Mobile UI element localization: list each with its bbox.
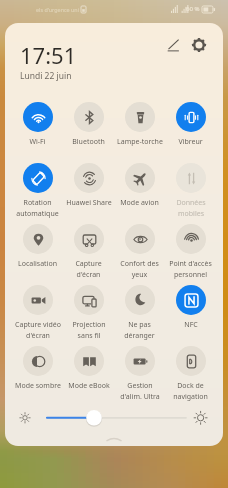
button[interactable]: NFC <box>165 285 216 330</box>
button[interactable]: Bluetooth <box>63 102 114 147</box>
staticText: Capture vidéo d'écran <box>15 320 61 340</box>
staticText: Huawei Share <box>66 198 112 208</box>
staticText: Données mobiles <box>176 198 206 218</box>
button[interactable]: Capture d'écran <box>63 224 114 279</box>
button[interactable]: Modifier <box>161 33 185 57</box>
button[interactable]: Données mobiles <box>165 163 216 218</box>
button[interactable]: Mode sombre <box>12 346 63 391</box>
button[interactable]: Localisation <box>12 224 63 269</box>
staticText: Ne pas déranger <box>124 320 155 340</box>
staticText: Dock de navigation <box>173 381 208 401</box>
staticText: NFC <box>184 320 198 330</box>
staticText: Rotation automatique <box>16 198 59 218</box>
button[interactable]: Luminosité <box>5 23 223 446</box>
button[interactable]: Confort des yeux <box>114 224 165 279</box>
button[interactable]: Mode eBook <box>63 346 114 391</box>
staticText: Lundi 22 juin <box>20 70 72 82</box>
button[interactable]: Rotation automatique <box>12 163 63 218</box>
button[interactable]: Wi-Fi <box>12 102 63 147</box>
staticText: Mode eBook <box>68 381 110 391</box>
staticText: Vibreur <box>178 137 203 147</box>
staticText: 17:51 <box>20 40 77 70</box>
button[interactable]: Huawei Share <box>63 163 114 208</box>
staticText: Mode sombre <box>15 381 61 391</box>
button[interactable]: Projection sans fil <box>63 285 114 340</box>
staticText: els d'urgence uni <box>36 6 80 13</box>
button[interactable]: Vibreur <box>165 102 216 147</box>
staticText: Mode avion <box>120 198 159 208</box>
staticText: Confort des yeux <box>120 259 159 279</box>
staticText: Wi-Fi <box>29 137 46 147</box>
staticText: Bluetooth <box>72 137 105 147</box>
button[interactable]: Mode avion <box>114 163 165 208</box>
staticText: Point d'accès personnel <box>169 259 212 279</box>
button[interactable]: Gestion d'alim. Ultra <box>114 346 165 401</box>
button[interactable]: Dock de navigation <box>165 346 216 401</box>
staticText: 60 % <box>186 5 200 13</box>
button[interactable]: Paramètres <box>187 33 211 57</box>
staticText: Projection sans fil <box>72 320 106 340</box>
button[interactable]: Ne pas déranger <box>114 285 165 340</box>
button[interactable]: Capture vidéo d'écran <box>12 285 63 340</box>
button[interactable]: Lampe-torche <box>114 102 165 147</box>
staticText: Lampe-torche <box>117 137 163 147</box>
staticText: Localisation <box>18 259 57 269</box>
button[interactable]: Point d'accès personnel <box>165 224 216 279</box>
staticText: Capture d'écran <box>75 259 102 279</box>
staticText: Gestion d'alim. Ultra <box>120 381 160 401</box>
